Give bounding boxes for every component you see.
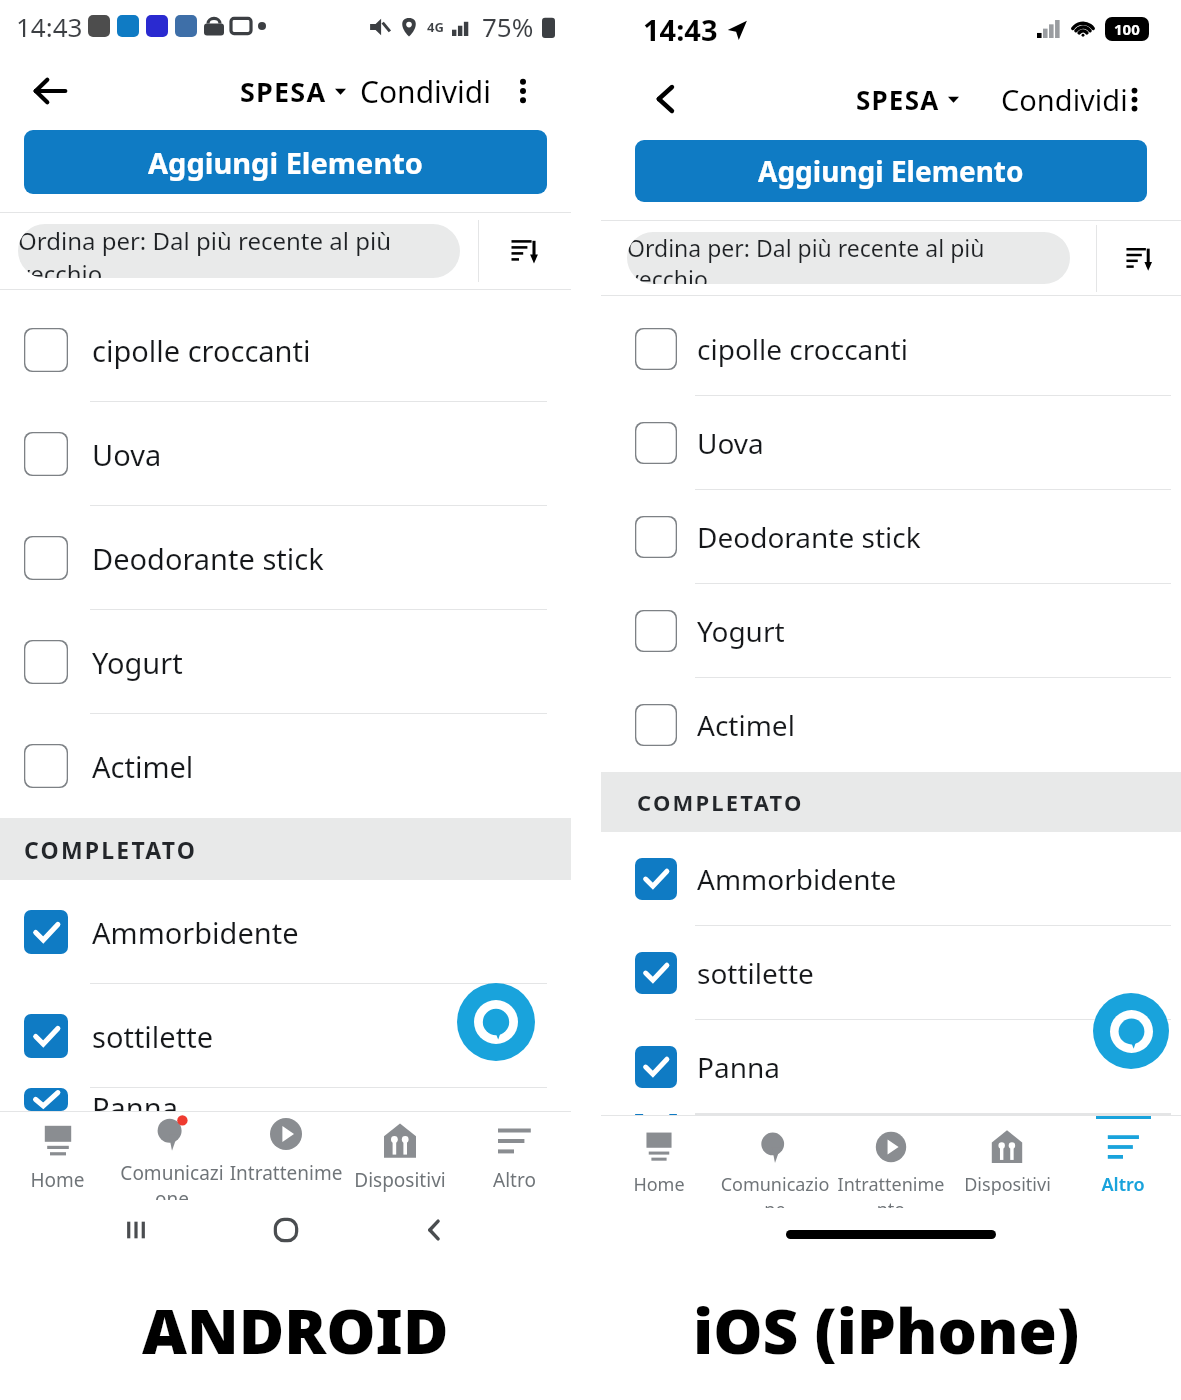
button[interactable]: Seleziona Actimel <box>0 714 571 818</box>
button[interactable]: Seleziona cipolle croccanti <box>0 298 571 402</box>
staticText: 14:43 <box>16 9 83 44</box>
button[interactable]: Seleziona cipolle croccanti <box>24 328 68 372</box>
staticText: Condividi <box>360 71 492 112</box>
button[interactable]: Deseleziona Ammorbidente <box>635 858 677 900</box>
button[interactable]: Deseleziona Ammorbidente <box>601 832 1181 926</box>
staticText: Actimel <box>92 747 194 786</box>
button[interactable]: Seleziona cipolle croccanti <box>601 302 1181 396</box>
button[interactable]: Deseleziona Panna <box>635 1046 677 1088</box>
button[interactable]: Intrattenimento <box>833 1116 949 1208</box>
staticText: Ordina per: Dal più recente al più vecch… <box>627 232 1070 284</box>
staticText: Aggiungi Elemento <box>148 143 423 182</box>
button[interactable]: Dispositivi <box>949 1116 1065 1197</box>
button[interactable]: Indietro <box>641 74 691 124</box>
staticText: 4G <box>427 18 444 36</box>
staticText: Dispositivi <box>354 1167 446 1193</box>
staticText: Comunicazione <box>115 1160 229 1200</box>
button[interactable]: Seleziona Deodorante stick <box>601 490 1181 584</box>
button[interactable]: Comunicazione <box>115 1112 229 1200</box>
button[interactable]: Seleziona Uova <box>24 432 68 476</box>
staticText: COMPLETATO <box>24 834 198 865</box>
button[interactable]: Dispositivi <box>343 1119 457 1193</box>
staticText: Intrattenime... <box>229 1160 343 1200</box>
staticText: Home <box>30 1167 85 1193</box>
staticText: COMPLETATO <box>637 787 804 817</box>
button[interactable]: Ordina per: Dal più recente al più vecch… <box>627 232 1070 284</box>
staticText: Ammorbidente <box>92 913 299 952</box>
button[interactable]: Deseleziona sottilette <box>24 1014 68 1058</box>
button[interactable]: Indietro <box>22 63 78 119</box>
staticText: 75% <box>482 9 534 44</box>
button[interactable]: Seleziona Yogurt <box>601 584 1181 678</box>
staticText: sottilette <box>697 954 814 992</box>
button[interactable]: Comunicazione <box>717 1116 833 1208</box>
button[interactable]: Deseleziona Panna <box>601 1020 1181 1114</box>
button[interactable]: Deseleziona Panna <box>24 1088 68 1111</box>
button[interactable]: SPESA <box>856 82 959 117</box>
staticText: Intrattenimento <box>833 1172 949 1208</box>
staticText: Ammorbidente <box>697 860 897 898</box>
staticText: Dispositivi <box>964 1172 1051 1197</box>
button[interactable]: Alexa <box>457 983 535 1061</box>
button[interactable]: Altre opzioni <box>1109 74 1159 124</box>
staticText: 14:43 <box>643 10 718 49</box>
button[interactable]: Seleziona Actimel <box>635 704 677 746</box>
staticText: iOS (iPhone) <box>693 1288 1080 1372</box>
button[interactable]: Deseleziona sapone liquido <box>601 1114 1181 1115</box>
staticText: Home <box>633 1172 685 1197</box>
staticText: Panna <box>697 1048 780 1086</box>
button[interactable]: Condividi <box>360 71 492 112</box>
button[interactable]: Ordina per: Dal più recente al più vecch… <box>18 224 460 278</box>
button[interactable]: Seleziona Deodorante stick <box>24 536 68 580</box>
staticText: ANDROID <box>142 1288 449 1372</box>
button[interactable]: Altro <box>457 1119 571 1193</box>
button[interactable]: Home <box>0 1119 115 1193</box>
button[interactable]: Seleziona Yogurt <box>0 610 571 714</box>
button[interactable]: Seleziona Uova <box>635 422 677 464</box>
button[interactable]: Seleziona cipolle croccanti <box>635 328 677 370</box>
staticText: Ordina per: Dal più recente al più vecch… <box>18 224 460 278</box>
button[interactable]: Seleziona Deodorante stick <box>0 506 571 610</box>
button[interactable]: Home <box>601 1116 717 1197</box>
button[interactable]: Altre opzioni <box>497 65 549 117</box>
staticText: Comunicazione <box>717 1172 833 1208</box>
button[interactable]: Deseleziona sapone liquido <box>635 1114 677 1115</box>
staticText: Yogurt <box>697 612 785 650</box>
staticText: Condividi <box>1001 80 1128 119</box>
button[interactable]: Deseleziona sottilette <box>635 952 677 994</box>
staticText: Panna <box>92 1088 178 1111</box>
staticText: Actimel <box>697 706 795 744</box>
button[interactable]: Seleziona Uova <box>0 402 571 506</box>
button[interactable]: Seleziona Deodorante stick <box>635 516 677 558</box>
button[interactable]: Intrattenime... <box>229 1112 343 1200</box>
button[interactable]: SPESA <box>240 73 346 110</box>
staticText: SPESA <box>240 73 327 110</box>
button[interactable]: Altro <box>1065 1116 1181 1197</box>
button[interactable]: Seleziona Yogurt <box>24 640 68 684</box>
button[interactable]: Ordina <box>1097 221 1181 295</box>
button[interactable]: Deseleziona Ammorbidente <box>0 880 571 984</box>
button[interactable]: Seleziona Uova <box>601 396 1181 490</box>
staticText: cipolle croccanti <box>697 330 908 368</box>
staticText: Altro <box>1101 1172 1145 1197</box>
button[interactable]: Seleziona Actimel <box>601 678 1181 772</box>
staticText: Uova <box>697 424 764 462</box>
button[interactable]: Deseleziona Ammorbidente <box>24 910 68 954</box>
staticText: Yogurt <box>92 643 183 682</box>
staticText: Aggiungi Elemento <box>758 152 1024 190</box>
button[interactable]: Seleziona Actimel <box>24 744 68 788</box>
staticText: SPESA <box>856 82 940 117</box>
button[interactable]: Condividi <box>1001 80 1128 119</box>
staticText: Deodorante stick <box>92 539 324 578</box>
button[interactable]: Deseleziona sottilette <box>601 926 1181 1020</box>
button[interactable]: Seleziona Yogurt <box>635 610 677 652</box>
button[interactable]: Aggiungi Elemento <box>635 140 1147 202</box>
button[interactable]: Alexa <box>1093 993 1169 1069</box>
button[interactable]: Aggiungi Elemento <box>24 130 547 194</box>
button[interactable]: Deseleziona Panna <box>0 1088 571 1111</box>
staticText: Uova <box>92 435 162 474</box>
staticText: 100 <box>1114 19 1140 39</box>
button[interactable]: Ordina <box>479 213 571 289</box>
button[interactable]: Deseleziona sottilette <box>0 984 571 1088</box>
